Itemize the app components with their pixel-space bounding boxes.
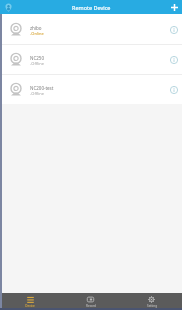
button[interactable]: Device: [0, 293, 60, 310]
button[interactable]: Add device: [166, 0, 182, 14]
button[interactable]: Device info: [166, 22, 182, 38]
button[interactable]: NC200-test: [0, 75, 182, 104]
staticText: Setting: [147, 304, 157, 308]
staticText: zhibo: [30, 25, 42, 31]
staticText: -Offline: [30, 61, 44, 66]
button[interactable]: zhibo: [0, 15, 182, 44]
staticText: -Offline: [30, 91, 44, 96]
button[interactable]: NC250: [0, 45, 182, 74]
staticText: NC250: [30, 55, 44, 61]
button[interactable]: Device info: [166, 52, 182, 68]
staticText: Remote Device: [72, 4, 111, 11]
staticText: -Online: [30, 31, 44, 36]
staticText: Record: [86, 304, 96, 308]
staticText: NC200-test: [30, 85, 54, 91]
staticText: Device: [25, 304, 35, 308]
button[interactable]: Record: [60, 293, 121, 310]
button[interactable]: Device info: [166, 82, 182, 98]
button[interactable]: Setting: [121, 293, 182, 310]
button[interactable]: Profile: [0, 0, 16, 14]
